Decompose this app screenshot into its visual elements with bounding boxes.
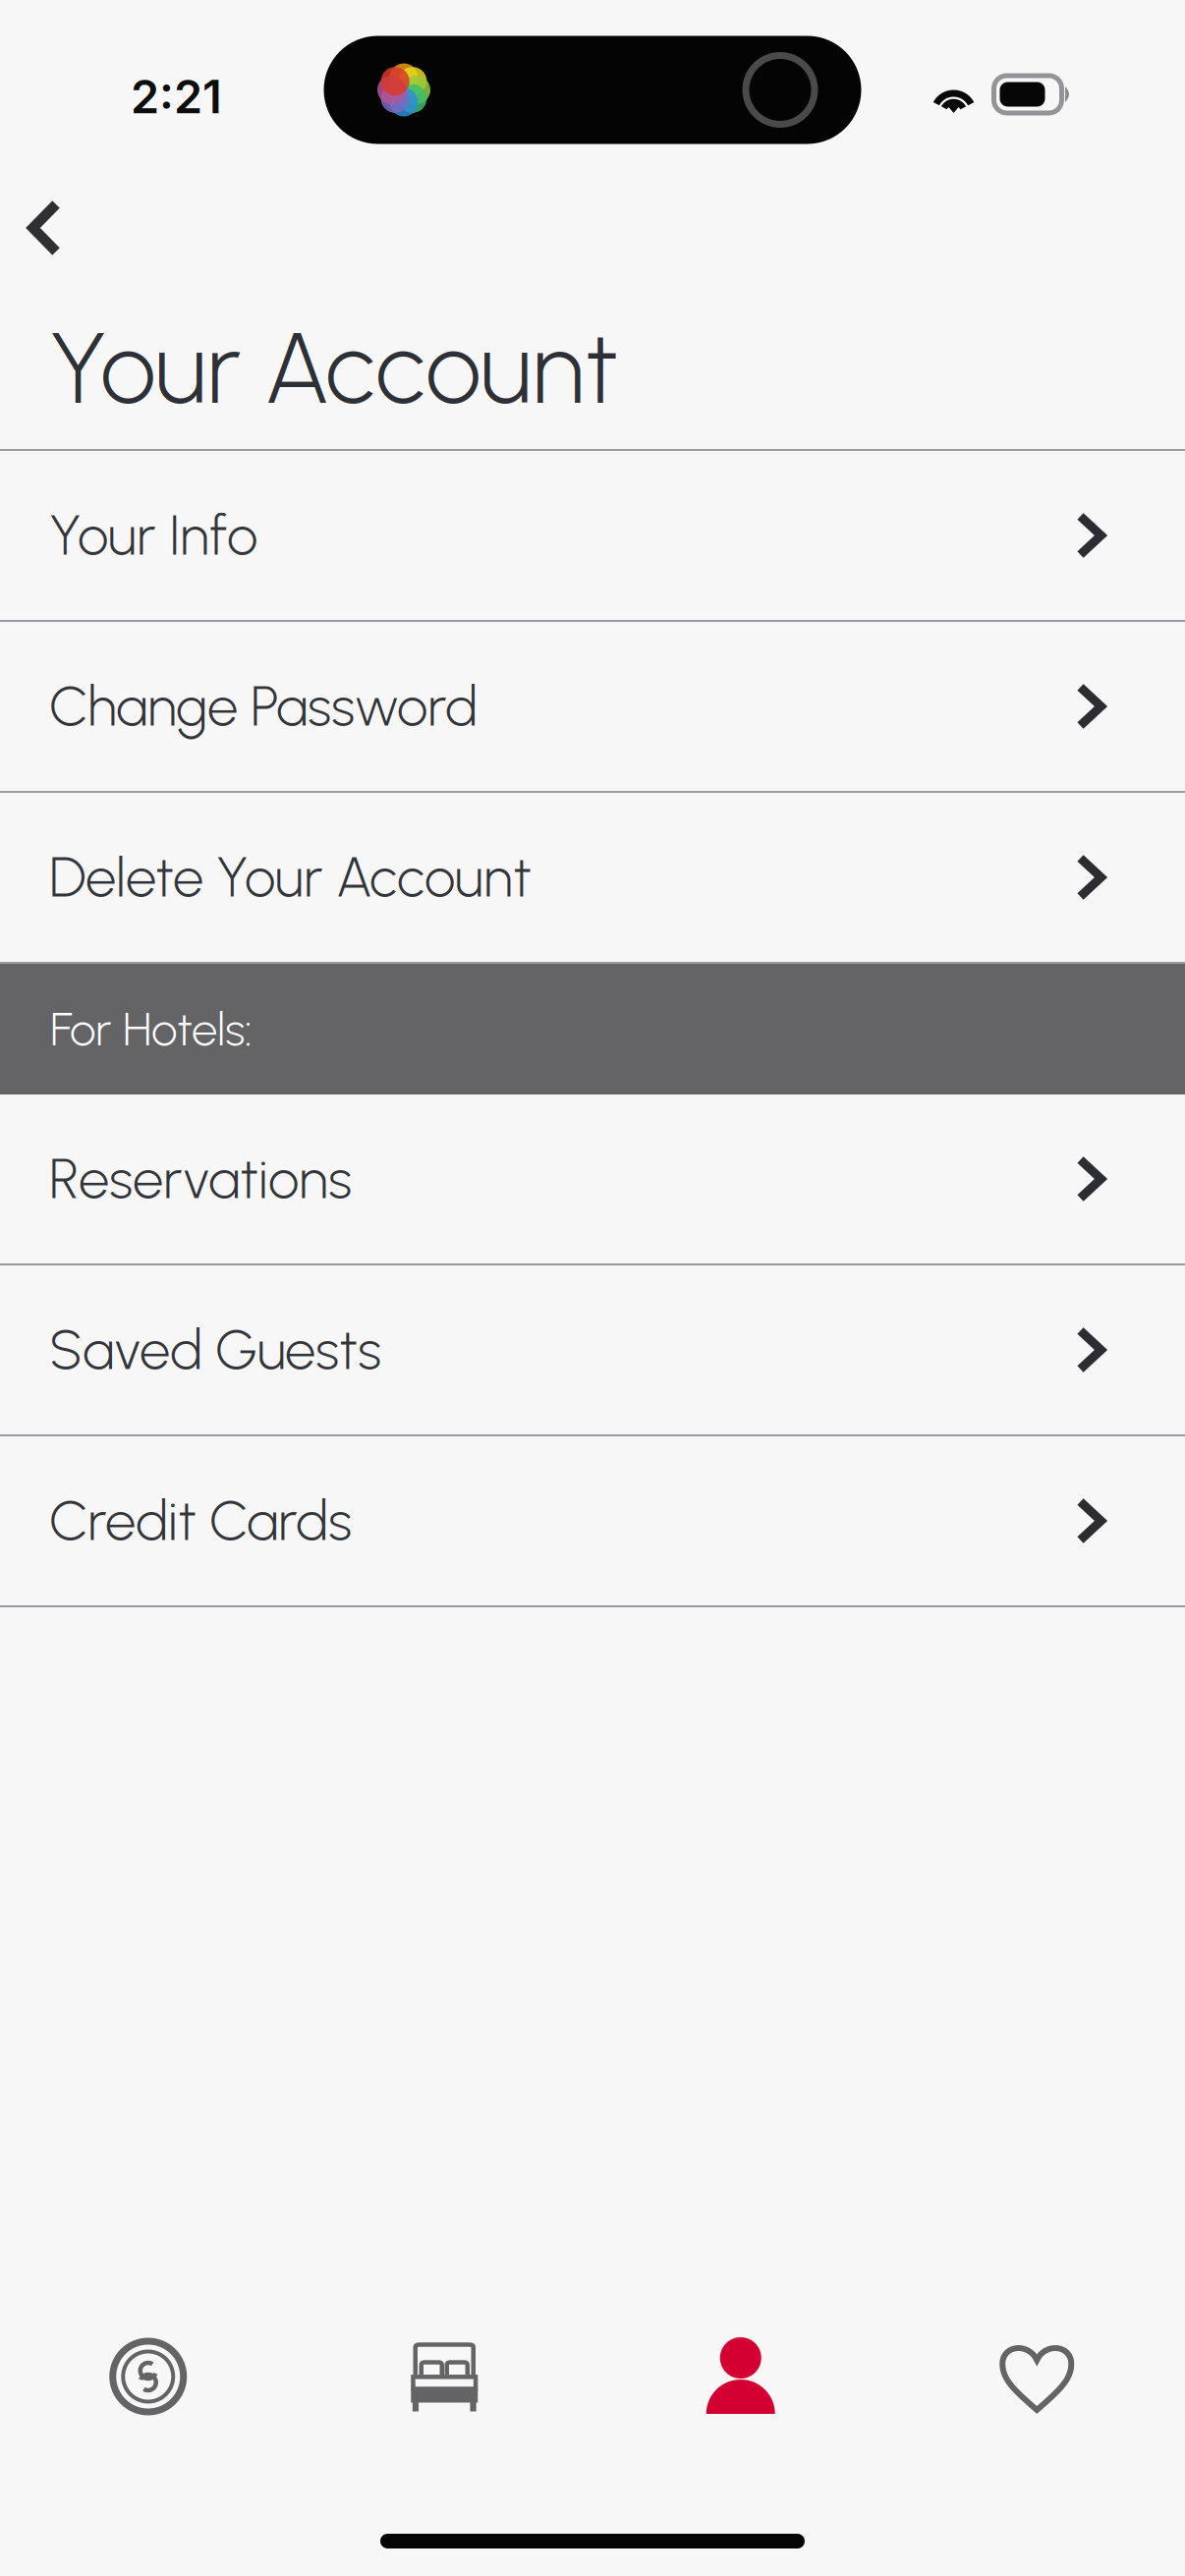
staticText: Reservations <box>49 1146 352 1212</box>
button[interactable]: Change Password <box>0 622 1185 793</box>
staticText: Credit Cards <box>49 1488 352 1554</box>
button[interactable]: Delete Your Account <box>0 793 1185 964</box>
staticText: Delete Your Account <box>49 844 532 910</box>
button[interactable]: Stays <box>296 2329 592 2424</box>
staticText: Your Account <box>49 308 619 428</box>
staticText: 2:21 <box>131 69 222 124</box>
staticText: Saved Guests <box>49 1317 381 1383</box>
button[interactable]: Back <box>0 149 90 287</box>
staticText: Your Info <box>49 502 257 568</box>
button[interactable]: Saved Guests <box>0 1265 1185 1436</box>
button[interactable]: Discover <box>0 2329 296 2424</box>
button[interactable]: Your Info <box>0 451 1185 622</box>
staticText: For Hotels: <box>50 1001 253 1057</box>
staticText: Change Password <box>49 673 478 739</box>
button[interactable]: Reservations <box>0 1094 1185 1265</box>
button[interactable]: Account <box>592 2329 889 2424</box>
button[interactable]: Favorites <box>889 2329 1185 2424</box>
button[interactable]: Credit Cards <box>0 1436 1185 1607</box>
